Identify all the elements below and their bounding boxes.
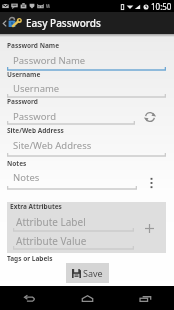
button[interactable]: Generate password: [143, 110, 157, 124]
staticText: Site/Web Address: [7, 126, 64, 135]
button[interactable]: Navigate up: [1, 16, 24, 30]
staticText: Password Name: [13, 54, 86, 67]
staticText: Username: [13, 82, 60, 95]
button[interactable]: Home: [58, 286, 116, 310]
staticText: Attribute Value: [16, 234, 87, 248]
staticText: Site/Web Address: [13, 139, 92, 152]
button[interactable]: Save: [66, 263, 109, 283]
staticText: Save: [83, 267, 103, 279]
button[interactable]: Recent apps: [116, 286, 174, 310]
staticText: Notes: [7, 159, 27, 168]
staticText: Password: [7, 97, 38, 106]
staticText: Password Name: [7, 41, 60, 50]
staticText: Easy Passwords: [26, 16, 101, 30]
button[interactable]: Back: [0, 286, 58, 310]
staticText: Extra Attributes: [10, 202, 62, 211]
staticText: Username: [7, 70, 41, 79]
staticText: 10:50: [151, 1, 172, 12]
button[interactable]: More options: [144, 175, 158, 189]
staticText: Attribute Label: [16, 215, 86, 229]
button[interactable]: Add attribute: [140, 219, 158, 237]
staticText: Tags or Labels: [7, 254, 53, 263]
staticText: Password: [13, 110, 56, 123]
staticText: Notes: [13, 171, 40, 184]
